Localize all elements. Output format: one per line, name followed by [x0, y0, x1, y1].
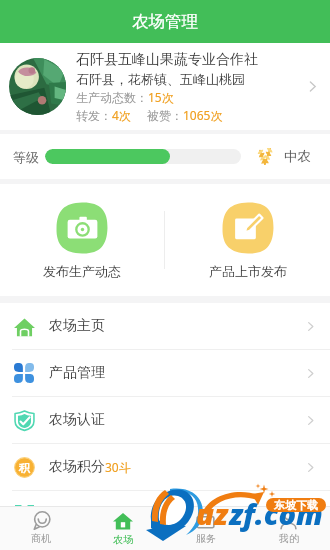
- button[interactable]: 积: [0, 444, 330, 490]
- staticText: 农场主页: [49, 317, 105, 335]
- button[interactable]: 服务: [164, 506, 247, 550]
- staticText: 产品上市发布: [209, 263, 287, 279]
- staticText: 1065次: [183, 107, 223, 123]
- staticText: 中农: [284, 148, 311, 165]
- button[interactable]: 商机: [0, 506, 82, 550]
- staticText: zf: [229, 494, 255, 533]
- staticText: 转发：: [76, 108, 112, 123]
- staticText: 农场: [113, 533, 133, 546]
- button[interactable]: 我的: [247, 506, 330, 550]
- staticText: 等级: [13, 149, 39, 165]
- button[interactable]: 产品管理: [0, 350, 330, 396]
- button[interactable]: 农场主页: [0, 303, 330, 349]
- staticText: uz: [196, 494, 229, 533]
- staticText: 农场管理: [132, 11, 198, 32]
- staticText: 商机: [31, 532, 51, 545]
- staticText: 我的: [279, 532, 299, 545]
- button[interactable]: 农场: [82, 506, 164, 550]
- staticText: 东坡下载: [274, 498, 318, 512]
- staticText: 石阡县，花桥镇、五峰山桃园: [76, 71, 245, 87]
- button[interactable]: 石阡县五峰山果蔬专业合作社: [0, 43, 330, 130]
- staticText: 发布生产动态: [43, 263, 121, 279]
- staticText: .com: [255, 494, 323, 533]
- button[interactable]: 农场认证: [0, 397, 330, 443]
- staticText: 积: [19, 461, 30, 475]
- staticText: 产品管理: [49, 364, 105, 382]
- staticText: 4次: [112, 107, 131, 123]
- staticText: 农场积分: [49, 458, 105, 476]
- staticText: 30斗: [105, 459, 131, 475]
- staticText: 石阡县五峰山果蔬专业合作社: [76, 51, 258, 69]
- button[interactable]: 农场二维码: [0, 491, 330, 537]
- staticText: 被赞：: [147, 108, 183, 123]
- staticText: 15次: [148, 89, 174, 105]
- staticText: 农场二维码: [49, 505, 119, 523]
- button[interactable]: Publish production update: [0, 184, 164, 296]
- button[interactable]: Publish product listing: [165, 184, 330, 296]
- staticText: 服务: [196, 532, 216, 545]
- staticText: 农场认证: [49, 411, 105, 429]
- staticText: 生产动态数：: [76, 90, 148, 105]
